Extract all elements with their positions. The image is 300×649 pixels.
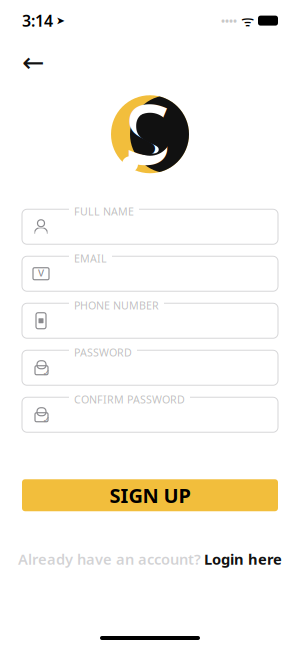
staticText: ✓ — [42, 414, 50, 425]
staticText: S — [132, 86, 175, 185]
staticText: 3:14 — [22, 10, 53, 31]
staticText: PASSWORD — [74, 345, 132, 359]
staticText: ᯤ — [241, 11, 254, 30]
staticText: CONFIRM PASSWORD — [74, 392, 185, 406]
staticText: ← — [22, 47, 44, 77]
staticText: FULL NAME — [74, 204, 134, 218]
staticText: Already have an account? — [18, 549, 201, 569]
staticText: v — [38, 264, 44, 280]
staticText: EMAIL — [74, 251, 107, 265]
staticText: SIGN UP — [109, 482, 190, 509]
staticText: S — [125, 77, 171, 187]
button[interactable]: ✓ — [22, 350, 278, 385]
button[interactable]: PHONE NUMBER — [22, 303, 278, 338]
button[interactable]: SIGN UP — [22, 479, 278, 511]
staticText: •••• — [221, 13, 237, 28]
button[interactable]: ✓ — [22, 397, 278, 432]
button[interactable]: Already have an account? — [0, 543, 300, 575]
staticText: ✓ — [42, 367, 50, 378]
staticText: ➤ — [56, 15, 65, 27]
button[interactable]: Back — [16, 47, 50, 77]
staticText: Login here — [204, 549, 282, 569]
staticText: PHONE NUMBER — [74, 298, 159, 312]
button[interactable]: FULL NAME — [22, 209, 278, 244]
button[interactable]: v — [22, 256, 278, 291]
